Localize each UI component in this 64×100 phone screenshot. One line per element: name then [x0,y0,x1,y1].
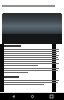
button[interactable] [2,13,62,44]
button[interactable]: Back [7,93,19,100]
button[interactable] [0,0,64,13]
button[interactable]: Recent apps [45,93,57,100]
button[interactable]: Home [26,93,38,100]
